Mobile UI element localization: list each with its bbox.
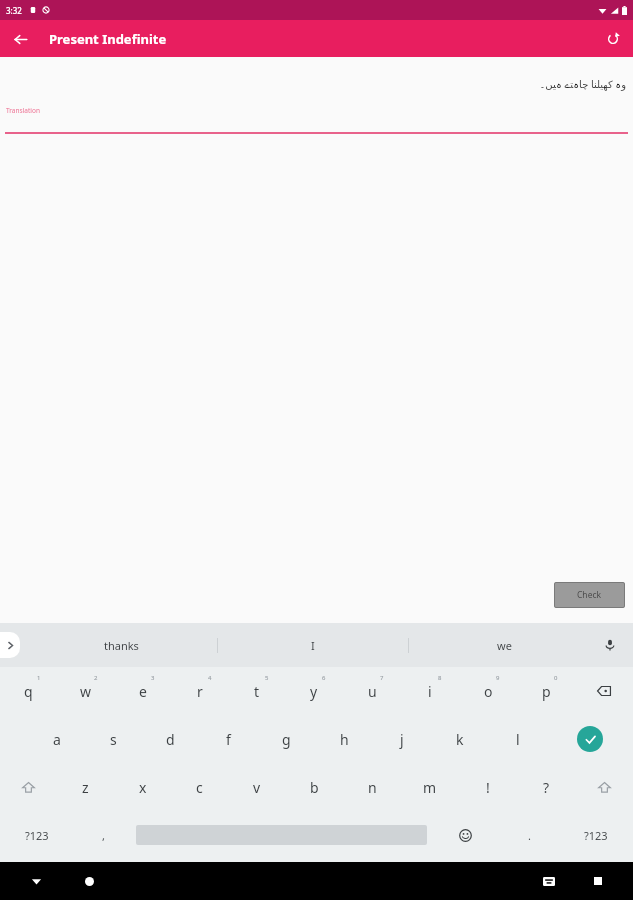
staticText: e — [139, 682, 147, 701]
staticText: q — [24, 682, 33, 701]
staticText: r — [197, 682, 203, 701]
staticText: thanks — [104, 638, 139, 653]
staticText: 3:32 — [6, 5, 22, 16]
button[interactable]: h — [315, 715, 373, 763]
button[interactable]: r — [171, 667, 228, 715]
button[interactable]: Hide keyboard — [23, 868, 49, 894]
staticText: h — [340, 730, 349, 749]
staticText: i — [428, 682, 432, 701]
staticText: we — [497, 638, 512, 653]
staticText: ? — [543, 778, 550, 797]
button[interactable]: Shift — [575, 763, 633, 811]
staticText: l — [516, 730, 520, 749]
staticText: 2 — [94, 674, 98, 682]
staticText: v — [253, 778, 261, 797]
button[interactable]: ? — [517, 763, 575, 811]
button[interactable]: Backspace — [575, 667, 633, 715]
staticText: 4 — [208, 674, 212, 682]
button[interactable]: c — [171, 763, 228, 811]
staticText: 5 — [265, 674, 269, 682]
staticText: 7 — [380, 674, 384, 682]
staticText: o — [484, 682, 493, 701]
staticText: s — [110, 730, 117, 749]
button[interactable]: thanks — [26, 623, 217, 667]
staticText: ?123 — [584, 828, 608, 843]
staticText: 0 — [554, 674, 558, 682]
button[interactable]: w — [57, 667, 114, 715]
button[interactable]: u — [343, 667, 401, 715]
staticText: . — [528, 828, 531, 843]
button[interactable]: a — [28, 715, 85, 763]
button[interactable]: , — [74, 811, 132, 859]
button[interactable]: ?123 — [558, 811, 633, 859]
button[interactable]: y — [285, 667, 343, 715]
button[interactable]: e — [114, 667, 171, 715]
staticText: 3 — [151, 674, 155, 682]
button[interactable]: t — [228, 667, 285, 715]
button[interactable]: Keyboard layout — [536, 868, 562, 894]
button[interactable]: Home — [76, 868, 102, 894]
button[interactable]: b — [285, 763, 343, 811]
staticText: g — [282, 730, 291, 749]
staticText: Translation — [6, 106, 40, 115]
staticText: b — [310, 778, 319, 797]
staticText: d — [166, 730, 175, 749]
button[interactable]: . — [500, 811, 558, 859]
button[interactable]: o — [459, 667, 517, 715]
button[interactable]: s — [85, 715, 142, 763]
button[interactable]: Refresh — [598, 24, 628, 54]
staticText: a — [53, 730, 61, 749]
button[interactable]: g — [257, 715, 315, 763]
staticText: z — [82, 778, 89, 797]
button[interactable]: ! — [459, 763, 517, 811]
button[interactable]: m — [401, 763, 459, 811]
staticText: t — [254, 682, 260, 701]
staticText: u — [368, 682, 377, 701]
button[interactable]: n — [343, 763, 401, 811]
button[interactable]: Enter — [547, 715, 633, 763]
button[interactable]: v — [228, 763, 285, 811]
button[interactable]: Recent apps — [585, 868, 611, 894]
staticText: Present Indefinite — [49, 30, 167, 48]
button[interactable]: k — [431, 715, 489, 763]
button[interactable]: Back — [4, 23, 36, 55]
button[interactable]: Emoji — [431, 811, 500, 859]
button[interactable]: Shift — [0, 763, 57, 811]
button[interactable]: l — [489, 715, 547, 763]
button[interactable]: x — [114, 763, 171, 811]
button[interactable]: f — [199, 715, 257, 763]
button[interactable]: j — [373, 715, 431, 763]
staticText: m — [423, 778, 437, 797]
staticText: c — [196, 778, 203, 797]
button[interactable]: q — [0, 667, 57, 715]
staticText: y — [310, 682, 318, 701]
button[interactable]: Voice input — [599, 634, 621, 656]
staticText: n — [368, 778, 377, 797]
button[interactable]: Expand suggestions — [0, 632, 20, 658]
button[interactable]: i — [401, 667, 459, 715]
staticText: p — [542, 682, 551, 701]
staticText: w — [80, 682, 92, 701]
staticText: ?123 — [25, 828, 49, 843]
staticText: 6 — [322, 674, 326, 682]
staticText: ! — [486, 778, 490, 797]
staticText: x — [139, 778, 147, 797]
staticText: 9 — [496, 674, 500, 682]
staticText: 1 — [37, 674, 41, 682]
staticText: وہ کھیلنا چاہتے ہیں۔ — [0, 77, 626, 91]
button[interactable]: d — [142, 715, 199, 763]
button[interactable]: Check — [554, 582, 625, 608]
staticText: Check — [577, 589, 602, 601]
button[interactable]: ?123 — [0, 811, 74, 859]
staticText: 8 — [438, 674, 442, 682]
staticText: f — [226, 730, 231, 749]
button[interactable]: we — [409, 623, 599, 667]
button[interactable]: I — [218, 623, 408, 667]
button[interactable]: z — [57, 763, 114, 811]
staticText: I — [311, 638, 315, 653]
staticText: , — [102, 828, 105, 843]
button[interactable]: p — [517, 667, 575, 715]
staticText: k — [456, 730, 464, 749]
staticText: j — [400, 730, 404, 749]
